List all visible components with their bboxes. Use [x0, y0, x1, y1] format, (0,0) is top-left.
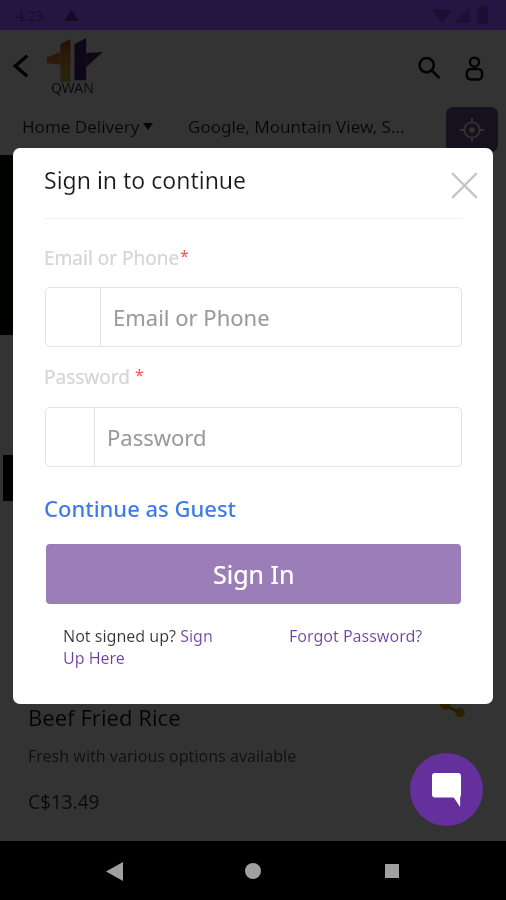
staticText: QWAN: [51, 78, 94, 97]
staticText: Sign in to continue: [44, 164, 247, 195]
staticText: C$13.49: [28, 789, 100, 815]
staticText: Not signed up? Sign Up Here: [63, 625, 237, 669]
button[interactable]: Back: [92, 849, 136, 893]
staticText: Password: [44, 364, 135, 390]
button[interactable]: Email or Phone: [45, 287, 462, 347]
button[interactable]: Back: [2, 48, 38, 84]
button[interactable]: Forgot Password?: [289, 625, 423, 647]
staticText: 4:23: [16, 6, 44, 25]
staticText: Password: [107, 422, 207, 452]
staticText: Email or Phone: [113, 302, 270, 332]
staticText: Continue as Guest: [44, 493, 237, 523]
staticText: Home Delivery: [22, 115, 140, 138]
staticText: Forgot Password?: [289, 625, 423, 647]
button[interactable]: Password: [45, 407, 462, 467]
staticText: *: [135, 364, 144, 386]
button[interactable]: QWAN home: [46, 34, 104, 96]
staticText: *: [180, 245, 189, 267]
button[interactable]: Continue as Guest: [42, 493, 239, 523]
button[interactable]: Search: [408, 47, 448, 87]
button[interactable]: Recent apps: [370, 849, 414, 893]
staticText: Sign In: [213, 557, 295, 591]
button[interactable]: Account: [454, 47, 494, 87]
button[interactable]: Home Delivery: [22, 115, 153, 138]
button[interactable]: Sign In: [46, 544, 461, 604]
staticText: Fresh with various options available: [28, 745, 297, 767]
staticText: Email or Phone: [44, 245, 180, 271]
button[interactable]: Home: [231, 849, 275, 893]
button[interactable]: Not signed up? Sign Up Here: [63, 625, 237, 669]
button[interactable]: Chat: [410, 753, 483, 826]
button[interactable]: Beef Fried Rice: [28, 702, 181, 732]
button[interactable]: Use current location: [446, 107, 498, 152]
button[interactable]: Close: [446, 167, 482, 203]
staticText: Google, Mountain View, S...: [188, 115, 405, 138]
